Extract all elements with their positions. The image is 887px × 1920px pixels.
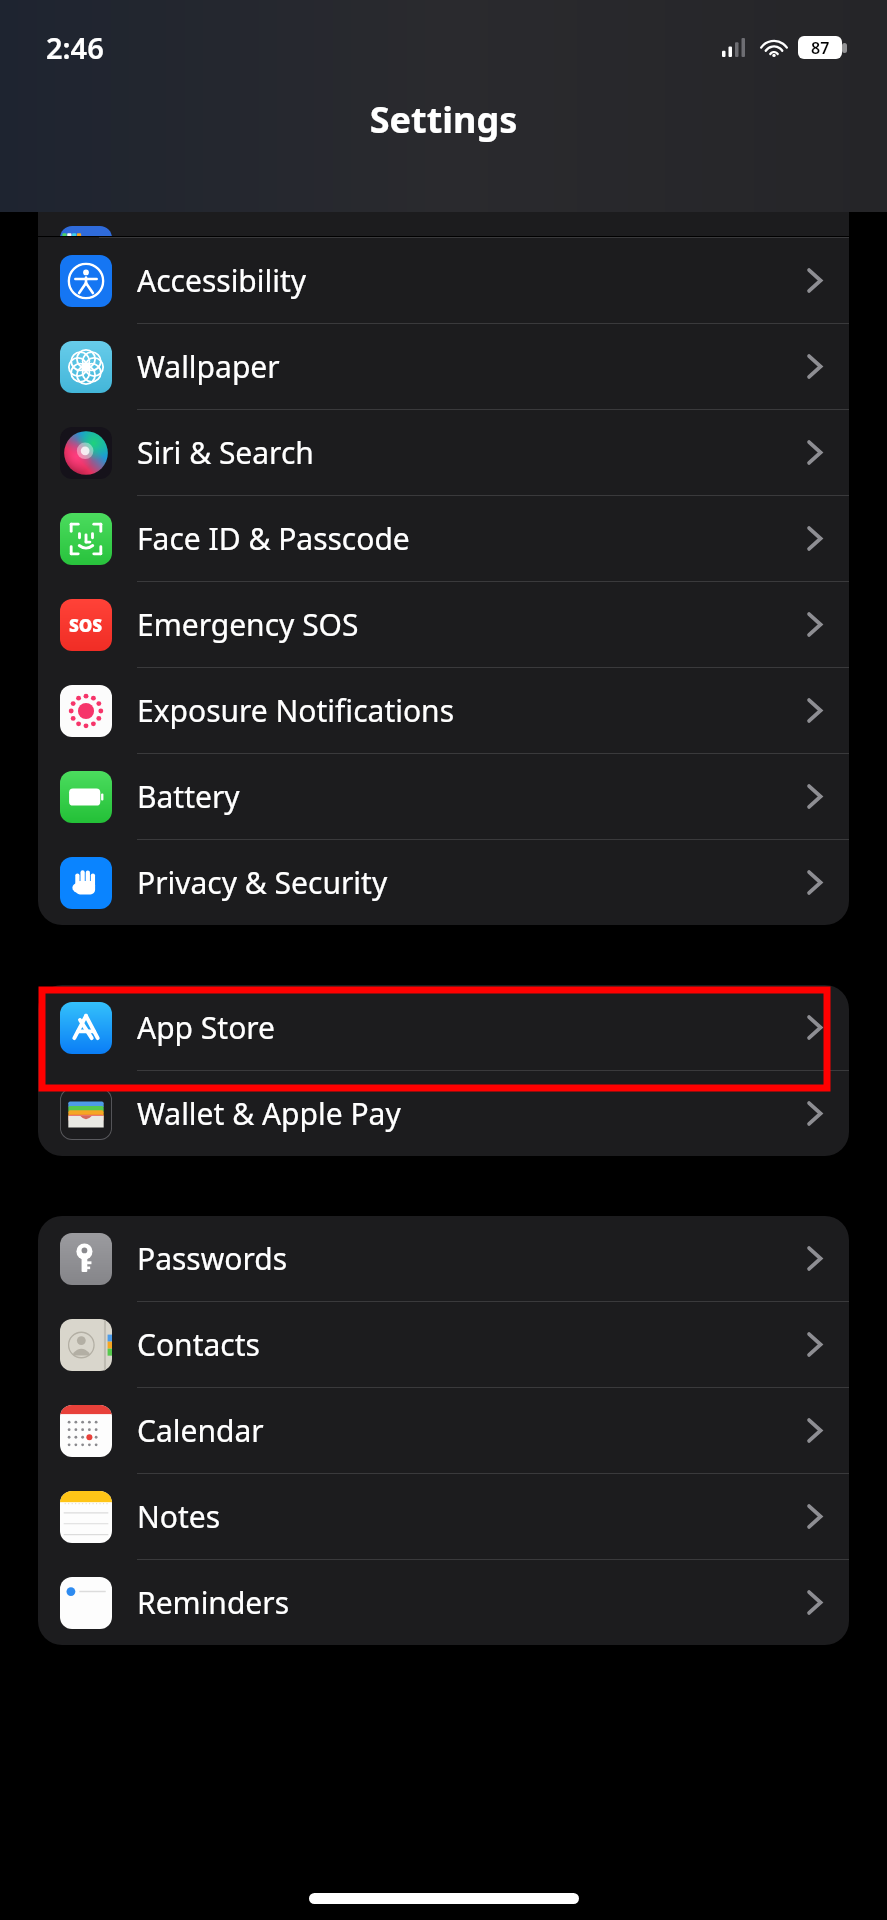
button[interactable]: SOS	[38, 582, 849, 667]
button[interactable]: Battery	[38, 754, 849, 839]
staticText: Emergency SOS	[137, 604, 359, 645]
button[interactable]: Wallet & Apple Pay	[38, 1071, 849, 1156]
button[interactable]: App Store	[38, 985, 849, 1070]
button[interactable]: Passwords	[38, 1216, 849, 1301]
staticText: Accessibility	[137, 260, 307, 301]
button[interactable]: Exposure Notifications	[38, 668, 849, 753]
button[interactable]: Accessibility	[38, 238, 849, 323]
button[interactable]: Notes	[38, 1474, 849, 1559]
staticText: 87	[811, 37, 830, 59]
staticText: Passwords	[137, 1238, 288, 1279]
staticText: Wallpaper	[137, 346, 280, 387]
staticText: 2:46	[46, 28, 104, 67]
button[interactable]: Privacy & Security	[38, 840, 849, 925]
staticText: App Store	[137, 1007, 276, 1048]
staticText: Battery	[137, 776, 240, 817]
button[interactable]: Face ID & Passcode	[38, 496, 849, 581]
staticText: Calendar	[137, 1410, 264, 1451]
staticText: Wallet & Apple Pay	[137, 1093, 401, 1134]
staticText: Contacts	[137, 1324, 260, 1365]
staticText: SOS	[69, 614, 103, 637]
button[interactable]: Wallpaper	[38, 324, 849, 409]
button[interactable]: Calendar	[38, 1388, 849, 1473]
button[interactable]: Siri & Search	[38, 410, 849, 495]
staticText: Exposure Notifications	[137, 690, 455, 731]
staticText: Reminders	[137, 1582, 290, 1623]
staticText: Privacy & Security	[137, 862, 388, 903]
button[interactable]: Reminders	[38, 1560, 849, 1645]
staticText: Face ID & Passcode	[137, 518, 410, 559]
staticText: Settings	[0, 95, 887, 144]
staticText: Siri & Search	[137, 432, 314, 473]
staticText: Notes	[137, 1496, 221, 1537]
button[interactable]: Contacts	[38, 1302, 849, 1387]
